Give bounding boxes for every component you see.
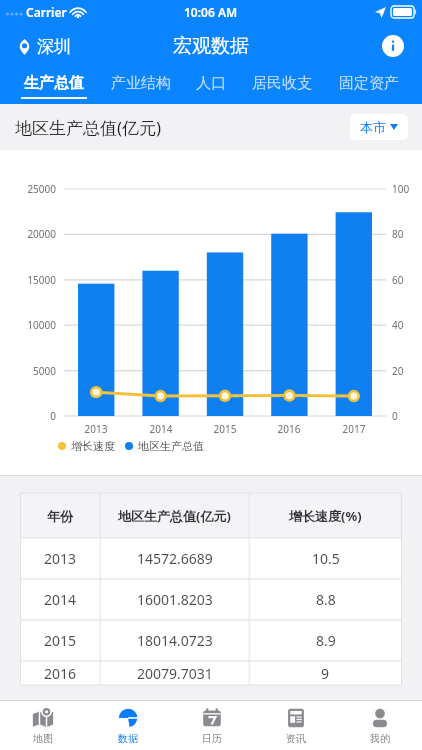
staticText: 居民收支 [252, 74, 312, 93]
staticText: 人口 [196, 74, 226, 93]
staticText: 20079.7031 [137, 664, 213, 683]
button[interactable]: 2013 [20, 538, 402, 579]
button[interactable]: 2014 [20, 579, 402, 620]
staticText: 深圳 [37, 36, 71, 57]
staticText: 18014.0723 [137, 631, 213, 650]
staticText: 8.8 [316, 590, 336, 609]
button[interactable]: Info [376, 29, 410, 63]
staticText: 8.9 [316, 631, 336, 650]
button[interactable]: 我的 [338, 701, 422, 750]
staticText: 0 [0, 409, 56, 423]
staticText: 本市 [360, 119, 386, 135]
button[interactable]: 人口 [184, 68, 238, 104]
staticText: 生产总值 [24, 74, 84, 93]
button[interactable]: 居民收支 [238, 68, 325, 104]
staticText: 10:06 AM [184, 4, 238, 20]
staticText: 地图 [33, 732, 53, 745]
staticText: 9 [321, 664, 330, 683]
staticText: 增长速度 [71, 439, 115, 453]
staticText: 20000 [0, 227, 56, 241]
button[interactable]: 数据 [85, 701, 170, 750]
staticText: 5000 [0, 364, 56, 378]
staticText: Carrier [26, 4, 67, 20]
staticText: 60 [392, 273, 422, 287]
other: Location [18, 39, 31, 55]
button[interactable]: 产业结构 [97, 68, 184, 104]
button[interactable]: 本市 [350, 114, 408, 140]
staticText: 10000 [0, 318, 56, 332]
button[interactable]: 地图 [0, 701, 85, 750]
staticText: 20 [392, 364, 422, 378]
staticText: 2016 [269, 422, 309, 436]
staticText: 地区生产总值(亿元) [15, 116, 162, 139]
button[interactable]: 日历 [170, 701, 254, 750]
staticText: 80 [392, 227, 422, 241]
staticText: 14572.6689 [137, 549, 213, 568]
button[interactable]: 生产总值 [10, 68, 97, 104]
staticText: 25000 [0, 182, 56, 196]
staticText: 宏观数据 [173, 34, 249, 58]
button[interactable]: 固定资产 [325, 68, 412, 104]
staticText: 日历 [202, 732, 222, 745]
staticText: 15000 [0, 273, 56, 287]
staticText: 数据 [118, 732, 138, 745]
staticText: 地区生产总值(亿元) [118, 507, 231, 525]
staticText: 2015 [44, 631, 77, 650]
staticText: 0 [392, 409, 422, 423]
button[interactable]: 2015 [20, 620, 402, 661]
staticText: 2016 [44, 664, 77, 683]
button[interactable]: 资讯 [254, 701, 338, 750]
staticText: 资讯 [286, 732, 306, 745]
staticText: 2013 [76, 422, 116, 436]
staticText: 10.5 [312, 549, 340, 568]
staticText: 2017 [334, 422, 374, 436]
staticText: 16001.8203 [137, 590, 213, 609]
staticText: 100 [392, 182, 422, 196]
button[interactable]: 年份 [20, 493, 402, 538]
staticText: 增长速度(%) [289, 507, 362, 525]
staticText: 40 [392, 318, 422, 332]
button[interactable]: 2016 [20, 661, 402, 685]
staticText: 2015 [205, 422, 245, 436]
staticText: 地区生产总值 [138, 439, 204, 453]
staticText: 2014 [44, 590, 77, 609]
staticText: 2014 [141, 422, 181, 436]
staticText: 产业结构 [111, 74, 171, 93]
button[interactable]: Location [14, 32, 75, 61]
staticText: 固定资产 [339, 74, 399, 93]
staticText: 我的 [370, 732, 390, 745]
staticText: 年份 [47, 508, 73, 524]
staticText: 2013 [44, 549, 77, 568]
